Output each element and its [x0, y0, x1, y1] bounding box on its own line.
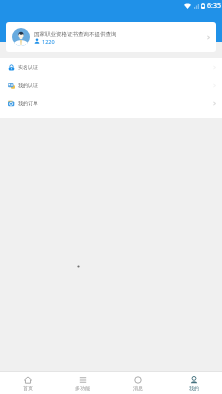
- button[interactable]: 消息: [110, 372, 166, 394]
- button[interactable]: 我的订单: [0, 94, 222, 112]
- staticText: 我的认证: [18, 82, 38, 88]
- staticText: 6:35: [207, 1, 221, 11]
- button[interactable]: 我的认证: [0, 76, 222, 94]
- staticText: 首页: [23, 385, 33, 391]
- button[interactable]: 实名认证: [0, 58, 222, 76]
- staticText: 实名认证: [18, 64, 38, 70]
- staticText: 消息: [133, 385, 143, 391]
- staticText: 国家职业资格证书查询不提供查询: [34, 31, 117, 37]
- staticText: 我的: [189, 385, 199, 391]
- button[interactable]: 多功能: [55, 372, 110, 394]
- button[interactable]: 我的: [166, 372, 222, 394]
- button[interactable]: 国家职业资格证书查询不提供查询: [6, 22, 216, 52]
- staticText: 多功能: [75, 385, 90, 391]
- staticText: 1220: [42, 38, 55, 44]
- staticText: 我的订单: [18, 100, 38, 106]
- button[interactable]: 首页: [0, 372, 55, 394]
